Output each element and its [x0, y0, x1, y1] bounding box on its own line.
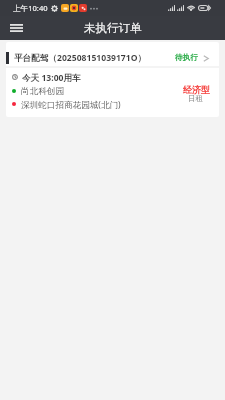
button[interactable]: Menu: [4, 16, 28, 40]
staticText: 上午10:40: [13, 3, 48, 13]
staticText: 深圳蛇口招商花园城(北门): [21, 99, 121, 109]
staticText: 平台配驾（202508151039171O）: [14, 52, 147, 64]
staticText: 未执行订单: [84, 21, 142, 35]
staticText: 经济型: [183, 84, 210, 95]
staticText: 待执行: [175, 53, 198, 63]
staticText: 今天 13:00用车: [22, 72, 81, 82]
staticText: 尚北科创园: [21, 86, 64, 96]
button[interactable]: 平台配驾（202508151039171O）: [6, 42, 219, 117]
staticText: 日租: [188, 94, 204, 104]
